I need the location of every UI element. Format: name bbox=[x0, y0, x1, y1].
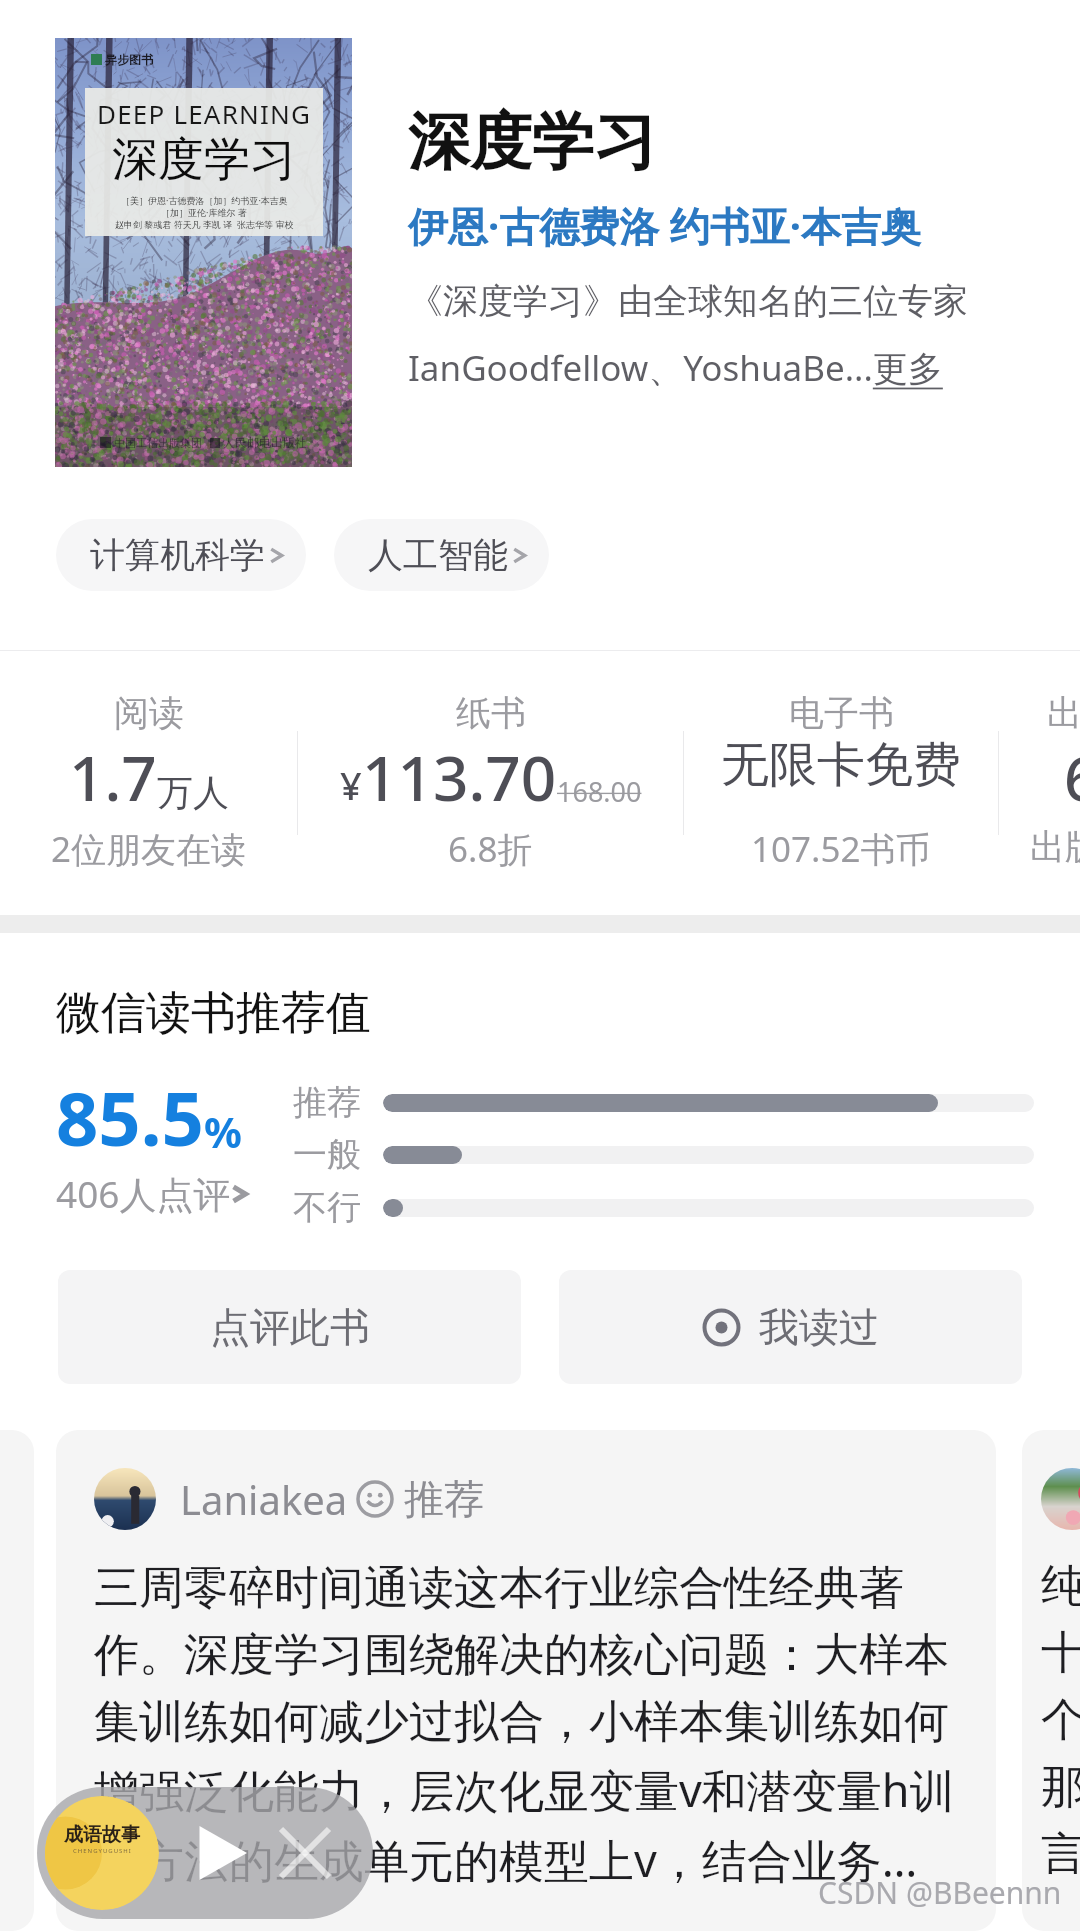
staticText: 人民邮电出版社 bbox=[223, 435, 307, 450]
button[interactable]: Laniakea bbox=[56, 1430, 996, 1931]
button[interactable]: 纯 十 个 那 言 bbox=[1022, 1430, 1080, 1931]
staticText: ［加］亚伦·库维尔 著 bbox=[161, 206, 247, 218]
staticText: 出版社 bbox=[1030, 825, 1080, 869]
staticText: 113.70 bbox=[362, 735, 557, 819]
staticText: ¥ bbox=[340, 759, 362, 811]
staticText: 1.7 bbox=[69, 735, 157, 819]
staticText: CSDN @BBeennn bbox=[818, 1872, 1062, 1913]
button[interactable]: 我读过 bbox=[559, 1270, 1022, 1384]
staticText: DEEP LEARNING bbox=[97, 96, 312, 131]
staticText: 6.8折 bbox=[448, 825, 533, 873]
button[interactable]: 《深度学习》由全球知名的三位专家IanGoodfellow、YoshuaBe..… bbox=[408, 279, 988, 391]
staticText: 不行 bbox=[293, 1186, 361, 1229]
staticText: 中国工信出版集团 bbox=[114, 436, 202, 450]
staticText: 168.00 bbox=[557, 773, 642, 810]
button[interactable]: 406人点评 bbox=[56, 1168, 248, 1219]
staticText: 异步图书 bbox=[105, 52, 153, 67]
staticText: 107.52书币 bbox=[751, 825, 931, 873]
staticText: 点评此书 bbox=[210, 1302, 370, 1352]
button[interactable]: 出版 bbox=[999, 651, 1080, 915]
other: Play bbox=[193, 1826, 247, 1880]
staticText: 85.5 bbox=[56, 1067, 204, 1168]
staticText: 微信读书推荐值 bbox=[56, 985, 371, 1042]
staticText: 406人点评 bbox=[56, 1168, 231, 1219]
staticText: % bbox=[204, 1103, 242, 1160]
button[interactable]: 深度学习 bbox=[408, 103, 656, 181]
button[interactable]: 伊恩·古德费洛 约书亚·本吉奥 bbox=[408, 198, 921, 253]
staticText: 阅读 bbox=[114, 691, 184, 735]
staticText: 纯 十 个 那 言 bbox=[1041, 1558, 1080, 1882]
staticText: 赵申剑 黎彧君 符天凡 李凯 译 张志华等 审校 bbox=[115, 218, 294, 230]
staticText: 出版 bbox=[1047, 691, 1080, 735]
button[interactable]: 成语故事 bbox=[37, 1787, 373, 1919]
button[interactable]: 纸书 bbox=[298, 651, 683, 915]
staticText: 计算机科学 bbox=[90, 533, 265, 577]
staticText: 电子书 bbox=[789, 691, 894, 735]
staticText: CHENGYUGUSHI bbox=[73, 1847, 132, 1855]
staticText: 纸书 bbox=[456, 691, 526, 735]
staticText: 深度学习 bbox=[112, 131, 296, 189]
staticText: Laniakea bbox=[180, 1472, 348, 1526]
staticText: 推荐 bbox=[293, 1081, 361, 1124]
staticText: 2位朋友在读 bbox=[51, 825, 247, 873]
staticText: 推荐 bbox=[404, 1474, 484, 1524]
button[interactable]: 阅读 bbox=[0, 651, 297, 915]
staticText: 成语故事 bbox=[64, 1823, 140, 1847]
button[interactable]: 电子书 bbox=[684, 651, 998, 915]
staticText: 三周零碎时间通读这本行业综合性经典著 作。深度学习围绕解决的核心问题：大样本 集… bbox=[94, 1560, 955, 1890]
staticText: 6 bbox=[1064, 735, 1080, 819]
staticText: 一般 bbox=[293, 1133, 361, 1176]
button[interactable]: 人工智能 bbox=[334, 519, 549, 591]
button[interactable]: 计算机科学 bbox=[56, 519, 306, 591]
staticText: 万人 bbox=[157, 770, 229, 815]
other: Close bbox=[281, 1829, 329, 1877]
staticText: 我读过 bbox=[759, 1302, 879, 1352]
staticText: 无限卡免费 bbox=[721, 735, 961, 795]
staticText: 人工智能 bbox=[368, 533, 508, 577]
button[interactable]: 点评此书 bbox=[58, 1270, 521, 1384]
staticText: ［美］伊恩·古德费洛［加］约书亚·本吉奥 bbox=[121, 194, 288, 206]
